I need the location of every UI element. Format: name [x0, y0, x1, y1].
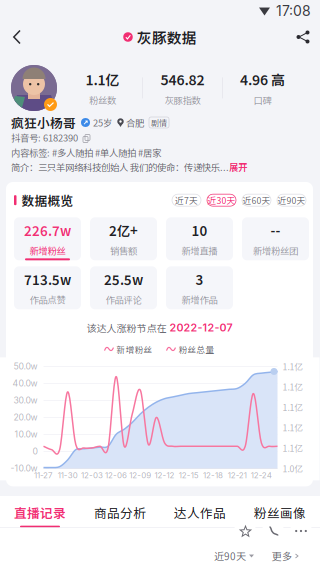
staticText: 12-18 — [203, 470, 223, 480]
staticText: -- — [270, 220, 280, 240]
staticText: 25.5w — [104, 269, 143, 289]
staticText: 近7天 — [175, 194, 198, 206]
staticText: 粉丝画像 — [254, 503, 306, 522]
staticText: 作品评论 — [105, 293, 141, 306]
staticText: 11-30 — [58, 470, 78, 480]
staticText: 合肥 — [126, 116, 144, 129]
staticText: 12-03 — [81, 470, 103, 480]
staticText: 1.1亿 — [282, 442, 303, 454]
button[interactable]: 近30天 — [207, 194, 236, 206]
staticText: -10.0w — [10, 463, 37, 474]
button[interactable]: 近90天 — [277, 194, 306, 206]
staticText: 1.1亿 — [282, 401, 303, 413]
button[interactable]: 粉丝画像 — [240, 495, 320, 527]
staticText: 简介：三只羊网络科技创始人 我们的使命：传递快乐... — [11, 160, 229, 174]
staticText: 新增粉丝 — [29, 244, 65, 257]
staticText: 直播记录 — [14, 503, 66, 522]
staticText: 12-09 — [129, 470, 151, 480]
staticText: 2022-12-07 — [169, 321, 232, 334]
staticText: 546.82 — [160, 69, 204, 89]
button[interactable]: 返回 — [0, 22, 34, 52]
staticText: 作品点赞 — [29, 293, 65, 306]
button[interactable]: 近7天 — [172, 194, 201, 206]
staticText: 新增粉丝 — [116, 343, 152, 355]
staticText: 30.0w — [13, 395, 37, 406]
staticText: 11-27 — [34, 470, 53, 480]
staticText: 近90天 — [277, 194, 305, 206]
staticText: 抖音号: 6182390 — [11, 131, 78, 144]
staticText: 粉丝总量 — [178, 343, 214, 355]
staticText: 口碑 — [253, 93, 271, 107]
staticText: 近90天 — [214, 549, 246, 563]
staticText: 25岁 — [93, 116, 112, 129]
staticText: 该达人涨粉节点在 — [86, 320, 166, 335]
staticText: 12-24 — [251, 470, 272, 480]
staticText: 12-06 — [105, 470, 127, 480]
staticText: 3 — [195, 269, 203, 289]
staticText: 4.96 高 — [240, 69, 285, 89]
button[interactable]: 直播记录 — [0, 495, 80, 527]
staticText: 新增粉丝团 — [253, 244, 298, 257]
staticText: 50.0w — [13, 361, 37, 372]
staticText: 内容标签: #多人随拍 #单人随拍 #居家 — [11, 146, 161, 159]
button[interactable]: 分享 — [286, 22, 320, 52]
staticText: 20.0w — [13, 412, 37, 423]
button[interactable]: 更多 — [272, 549, 298, 563]
staticText: 粉丝数 — [89, 93, 116, 107]
staticText: 数据概览 — [21, 191, 73, 209]
staticText: 灰豚数据 — [137, 26, 197, 48]
button[interactable]: 联系 — [262, 520, 284, 542]
staticText: 灰豚指数 — [164, 93, 200, 107]
button[interactable]: -- — [242, 217, 309, 260]
staticText: 17:08 — [276, 2, 311, 19]
staticText: 1.1亿 — [282, 421, 303, 434]
button[interactable]: 商品分析 — [80, 495, 160, 527]
button[interactable]: 3 — [166, 266, 233, 309]
staticText: 展开 — [229, 160, 247, 174]
button[interactable]: 713.5w — [14, 266, 81, 309]
staticText: 新增作品 — [181, 293, 217, 306]
button[interactable]: 25.5w — [90, 266, 157, 309]
staticText: 713.5w — [24, 269, 71, 289]
staticText: 近30天 — [207, 194, 235, 206]
staticText: 疯狂小杨哥 — [11, 113, 76, 132]
staticText: 销售额 — [110, 244, 137, 257]
staticText: 达人作品 — [174, 503, 226, 522]
staticText: 1.0亿 — [282, 462, 303, 475]
button[interactable]: 近90天 — [214, 549, 254, 563]
staticText: 新增直播 — [181, 244, 217, 257]
staticText: 近60天 — [242, 194, 270, 206]
staticText: 10 — [191, 220, 207, 240]
button[interactable]: 10 — [166, 217, 233, 260]
staticText: 12-21 — [228, 470, 247, 480]
button[interactable]: 近60天 — [242, 194, 271, 206]
staticText: 40.0w — [12, 378, 37, 389]
button[interactable]: 达人作品 — [160, 495, 240, 527]
staticText: 12-15 — [179, 470, 199, 480]
staticText: 226.7w — [24, 220, 71, 240]
staticText: 12-12 — [154, 470, 174, 480]
staticText: 更多 — [272, 549, 292, 563]
button[interactable]: 更多操作 — [290, 520, 312, 542]
staticText: 商品分析 — [94, 503, 146, 522]
staticText: 1.1亿 — [282, 380, 303, 393]
staticText: 1.1亿 — [85, 69, 119, 89]
button[interactable]: 2亿+ — [90, 217, 157, 260]
staticText: 1.1亿 — [282, 360, 303, 373]
staticText: 0 — [32, 446, 37, 457]
staticText: 剧情 — [151, 117, 167, 128]
staticText: 10.0w — [14, 429, 37, 440]
staticText: 2亿+ — [109, 220, 138, 240]
button[interactable]: 226.7w — [14, 217, 81, 260]
button[interactable]: 收藏 — [234, 520, 256, 542]
